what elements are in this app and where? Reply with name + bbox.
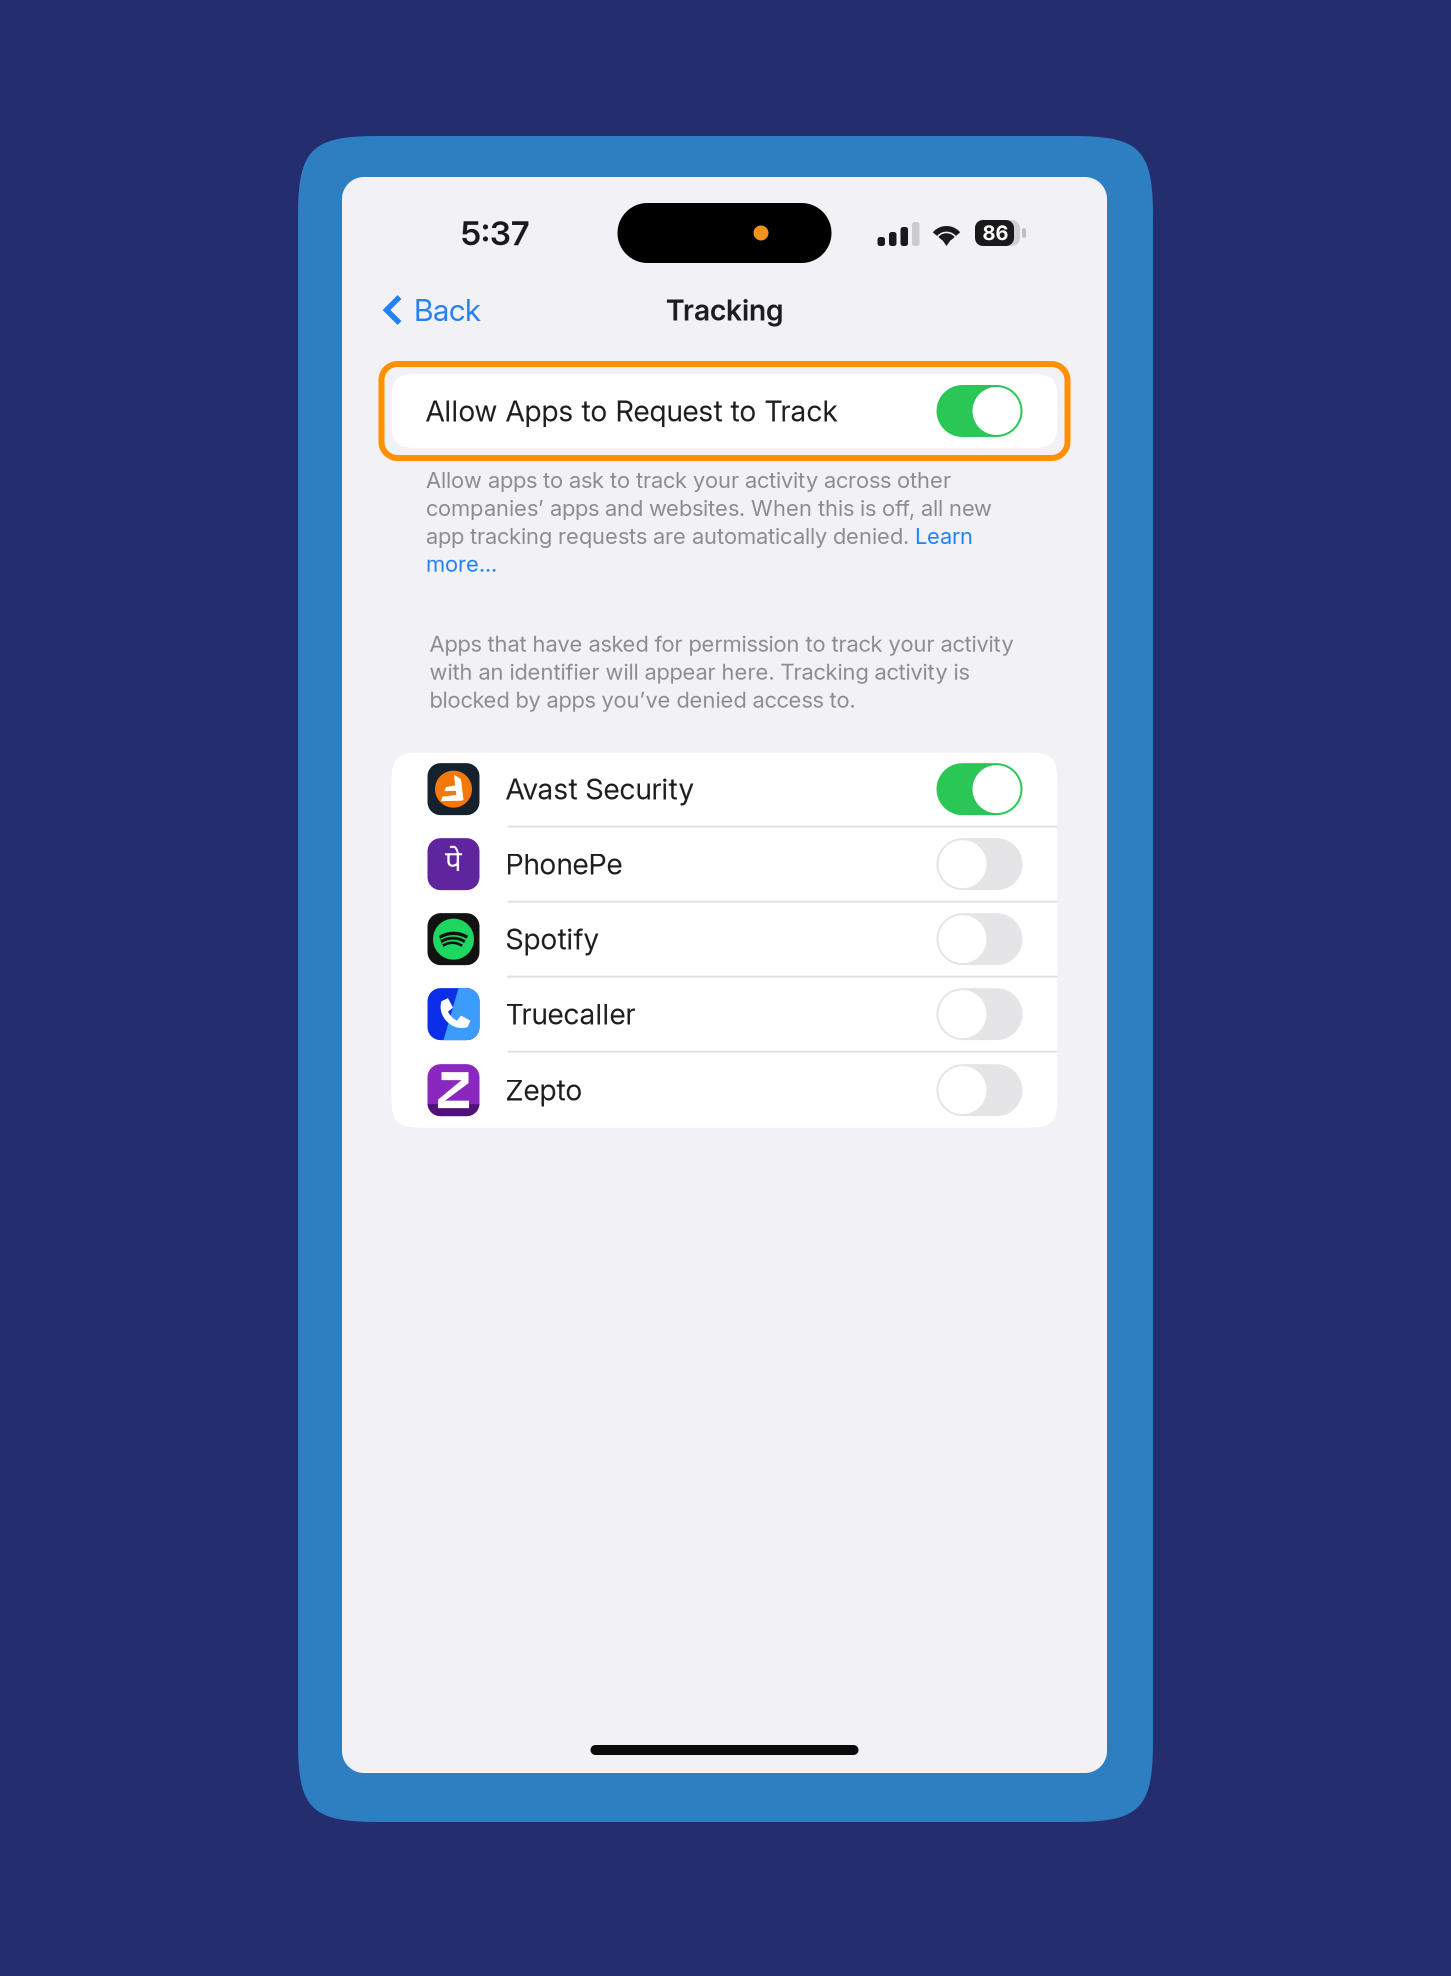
staticText: 5:37 [461,213,529,253]
button[interactable]: Zepto [391,1053,1057,1128]
staticText: Truecaller [505,997,635,1031]
staticText: Tracking [666,293,783,327]
staticText: 86 [982,221,1008,245]
button[interactable]: Allow Apps to Request to Track [391,374,1057,448]
staticText: Allow Apps to Request to Track [425,394,837,428]
staticText: पे [445,845,462,883]
staticText: Spotify [505,922,599,956]
staticText: Avast Security [505,772,694,806]
staticText: PhonePe [505,847,622,881]
staticText: Allow apps to ask to track your activity… [426,466,992,578]
staticText: Back [414,292,481,328]
staticText: Apps that have asked for permission to t… [429,630,1013,714]
button[interactable]: पे [391,828,1057,903]
button[interactable]: Spotify [391,903,1057,978]
staticText: Zepto [505,1073,582,1107]
button[interactable]: Avast Security [391,753,1057,828]
button[interactable]: Truecaller [391,978,1057,1053]
button[interactable]: Back [342,280,497,340]
